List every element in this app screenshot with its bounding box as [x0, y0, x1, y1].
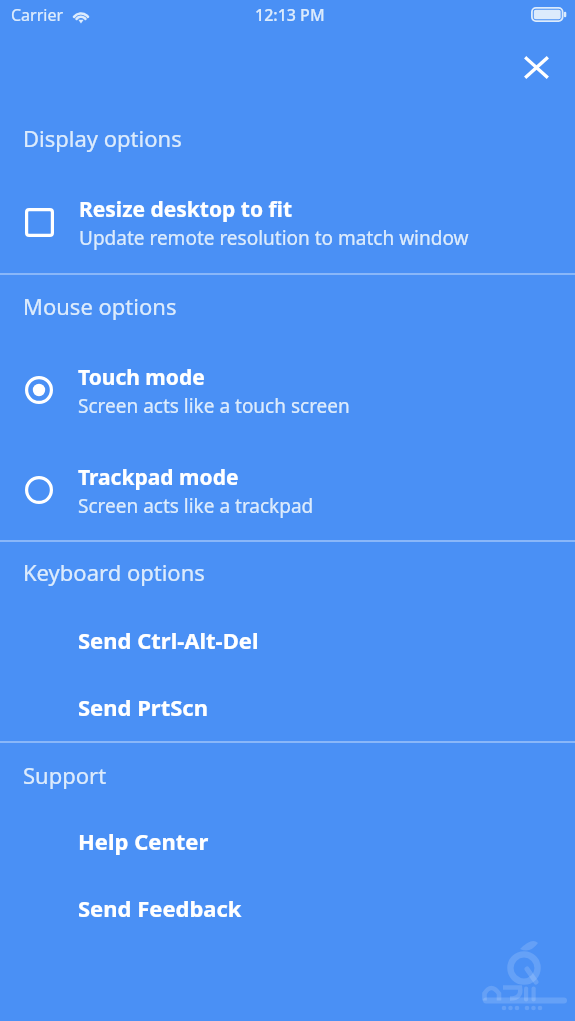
button[interactable]: Send PrtScn	[0, 684, 575, 730]
button[interactable]: Send Ctrl-Alt-Del	[0, 617, 575, 663]
staticText: 12:13 PM	[255, 4, 325, 26]
staticText: Resize desktop to fit	[79, 195, 293, 224]
staticText: Trackpad mode	[78, 463, 239, 492]
staticText: Send PrtScn	[78, 692, 208, 722]
staticText: Keyboard options	[23, 557, 205, 587]
staticText: Carrier	[11, 4, 64, 26]
staticText: Screen acts like a touch screen	[78, 393, 350, 419]
button[interactable]: Help Center	[0, 818, 575, 864]
staticText: Support	[23, 760, 107, 790]
staticText: Send Ctrl-Alt-Del	[78, 625, 259, 655]
staticText: Display options	[23, 123, 182, 153]
button[interactable]: Close	[512, 43, 560, 91]
staticText: Update remote resolution to match window	[79, 225, 469, 251]
button[interactable]: Touch mode	[0, 359, 575, 421]
button[interactable]: Send Feedback	[0, 885, 575, 931]
staticText: Help Center	[78, 826, 209, 856]
button[interactable]: Trackpad mode	[0, 459, 575, 521]
staticText: Mouse options	[23, 291, 177, 321]
staticText: Touch mode	[78, 363, 205, 392]
staticText: Send Feedback	[78, 893, 242, 923]
staticText: Screen acts like a trackpad	[78, 493, 314, 519]
button[interactable]: Resize desktop to fit	[0, 192, 575, 254]
